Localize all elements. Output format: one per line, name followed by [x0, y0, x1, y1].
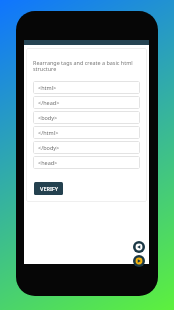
button[interactable]: Next	[133, 255, 145, 267]
staticText: <body>	[38, 114, 58, 121]
button[interactable]: <html>	[33, 81, 140, 94]
staticText: </html>	[38, 129, 59, 136]
staticText: <html>	[38, 84, 57, 91]
button[interactable]: </body>	[33, 141, 140, 154]
staticText: Rearrange tags and create a basic html s…	[33, 59, 140, 73]
button[interactable]: </head>	[33, 96, 140, 109]
button[interactable]: <head>	[33, 156, 140, 169]
button[interactable]: VERIFY	[34, 182, 63, 195]
staticText: <head>	[38, 159, 58, 166]
button[interactable]: </html>	[33, 126, 140, 139]
staticText: VERIFY	[40, 185, 58, 192]
staticText: </head>	[38, 99, 60, 106]
button[interactable]: <body>	[33, 111, 140, 124]
button[interactable]: Previous	[133, 241, 145, 253]
staticText: </body>	[38, 144, 60, 151]
